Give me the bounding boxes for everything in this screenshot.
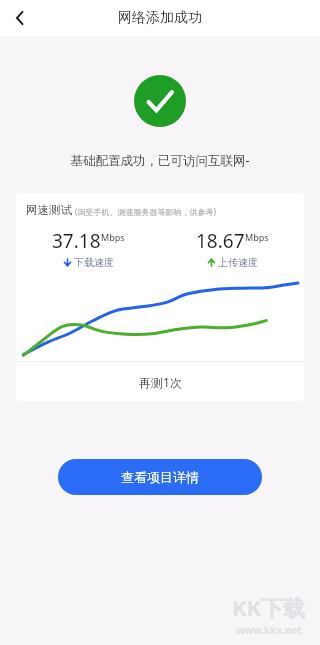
staticText: 下载速度 <box>74 256 114 269</box>
button[interactable]: Back <box>0 0 40 36</box>
button[interactable]: 再测1次 <box>16 362 304 401</box>
staticText: Mbps <box>101 231 125 243</box>
staticText: Mbps <box>245 231 269 243</box>
staticText: 网络添加成功 <box>118 9 202 27</box>
staticText: www.kkx.net <box>236 623 302 637</box>
button[interactable]: 查看项目详情 <box>58 459 262 495</box>
staticText: 基础配置成功，已可访问互联网- <box>16 152 304 169</box>
staticText: 上传速度 <box>218 256 258 269</box>
staticText: (因受手机、测速服务器等影响，供参考) <box>75 206 216 217</box>
staticText: 37.18 <box>52 228 101 254</box>
staticText: 网速测试 <box>26 203 72 217</box>
staticText: KK下载 <box>232 592 306 622</box>
staticText: 18.67 <box>196 228 245 254</box>
staticText: 查看项目详情 <box>121 469 199 485</box>
staticText: 再测1次 <box>139 374 182 390</box>
